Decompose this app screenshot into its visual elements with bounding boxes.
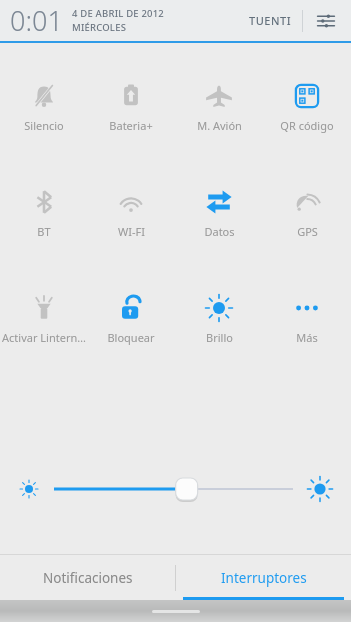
staticText: BT — [37, 224, 51, 239]
button[interactable]: WI-FI — [87, 183, 175, 241]
staticText: Datos — [204, 224, 235, 239]
staticText: Silencio — [24, 118, 64, 133]
button[interactable]: BT — [0, 183, 87, 241]
staticText: M. Avión — [197, 118, 242, 133]
button[interactable]: Settings — [311, 6, 341, 36]
button[interactable]: TUENTI — [243, 7, 298, 34]
staticText: Bateria+ — [109, 118, 153, 133]
staticText: Brillo — [206, 330, 233, 345]
staticText: 0:01 — [10, 2, 63, 39]
staticText: TUENTI — [249, 13, 292, 28]
button[interactable]: Brightness high — [303, 472, 337, 506]
staticText: Bloquear — [107, 330, 155, 345]
button[interactable]: Silencio — [0, 77, 87, 135]
staticText: Interruptores — [221, 569, 307, 587]
button[interactable]: Interruptores — [176, 555, 351, 600]
staticText: Activar Lintern… — [2, 330, 86, 345]
staticText: GPS — [297, 224, 318, 239]
button[interactable]: Bateria+ — [87, 77, 175, 135]
button[interactable]: Brightness slider — [54, 472, 293, 506]
button[interactable]: Datos — [175, 183, 263, 241]
button[interactable]: Bloquear — [87, 289, 175, 347]
button[interactable]: GPS — [263, 183, 351, 241]
staticText: QR código — [280, 118, 334, 133]
staticText: WI-FI — [118, 224, 145, 239]
button[interactable]: Activar Lintern… — [0, 289, 87, 347]
button[interactable]: Notificaciones — [0, 555, 175, 600]
button[interactable]: M. Avión — [175, 77, 263, 135]
button[interactable]: Brillo — [175, 289, 263, 347]
staticText: MIÉRCOLES — [72, 21, 127, 34]
button[interactable]: Brightness low — [14, 474, 44, 504]
staticText: Más — [296, 330, 318, 345]
button[interactable]: QR código — [263, 77, 351, 135]
staticText: Notificaciones — [43, 569, 133, 587]
button[interactable]: Más — [263, 289, 351, 347]
staticText: 4 DE ABRIL DE 2012 — [72, 7, 164, 20]
